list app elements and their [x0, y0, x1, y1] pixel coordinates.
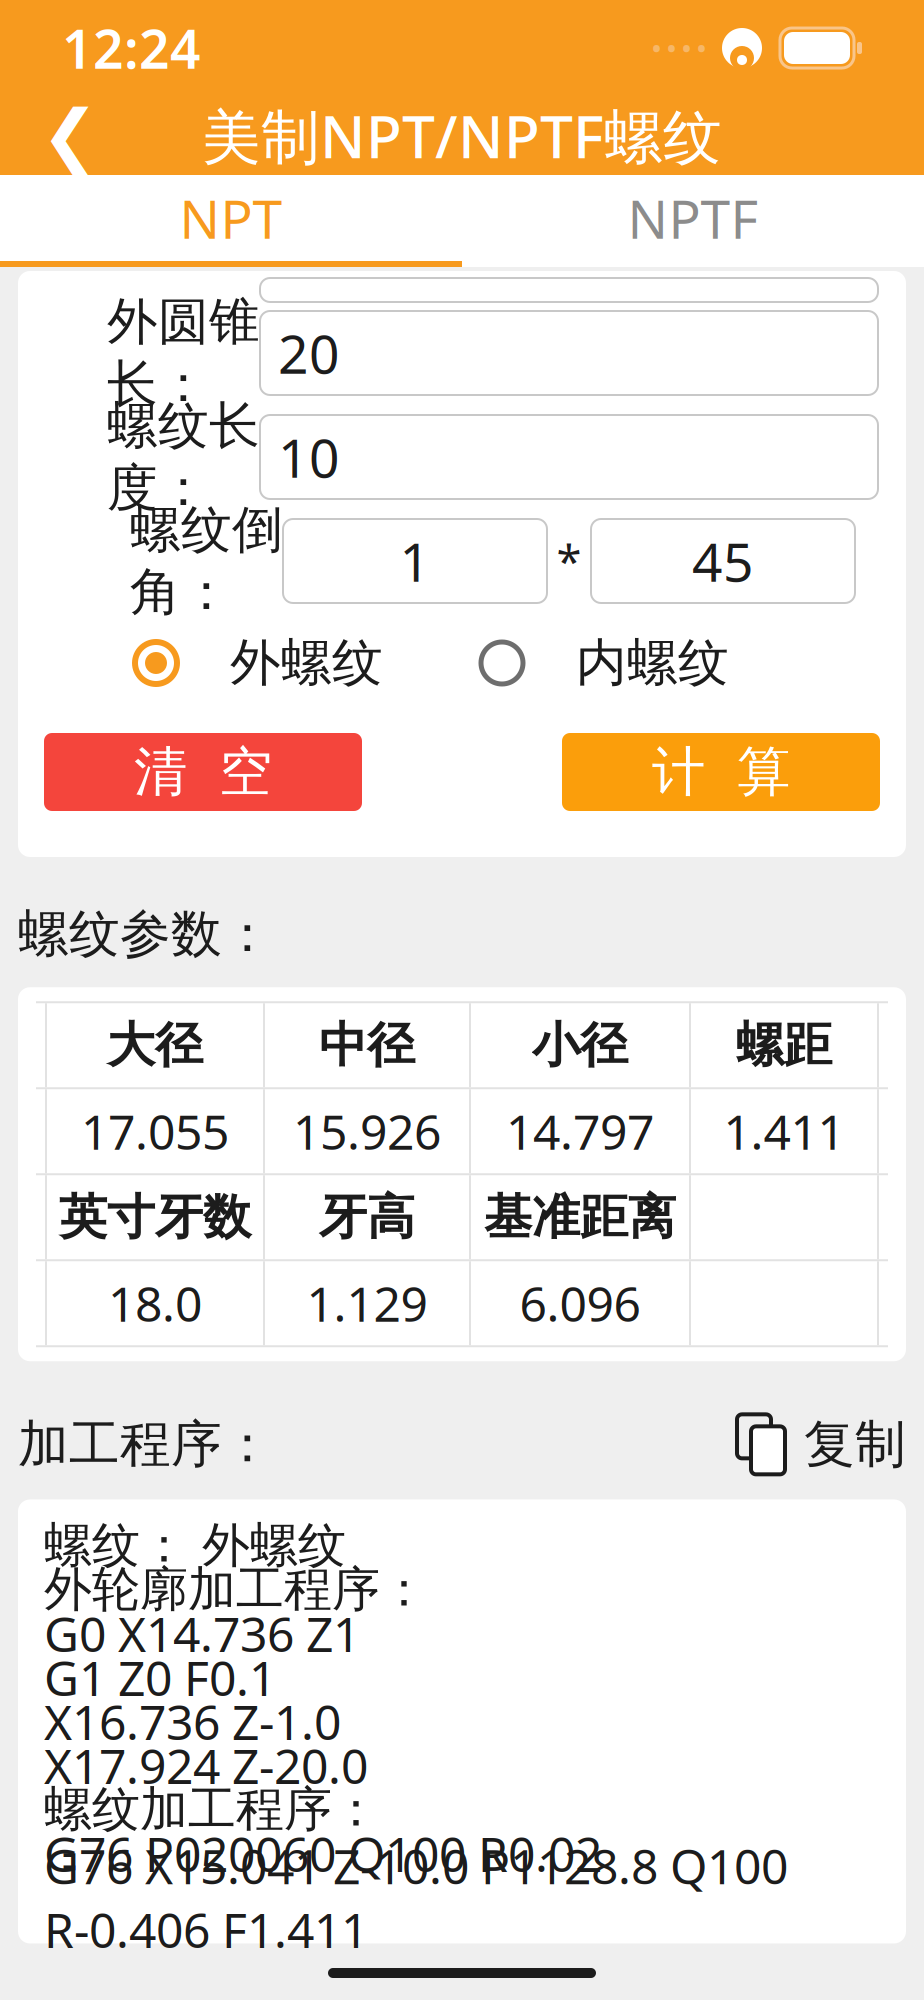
staticText: 螺纹参数：	[18, 903, 273, 965]
staticText: 螺纹： 外螺纹	[44, 1516, 346, 1575]
staticText: G1 Z0 F0.1	[44, 1646, 276, 1709]
staticText: G0 X14.736 Z1	[44, 1602, 360, 1665]
staticText: 清 空	[134, 739, 272, 805]
staticText: 螺纹倒角：	[130, 499, 283, 623]
staticText: 美制NPT/NPTF螺纹	[202, 96, 722, 174]
staticText: 20	[278, 318, 340, 388]
staticText: 15.926	[293, 1099, 441, 1163]
staticText: 1.411	[723, 1099, 844, 1163]
staticText: 17.055	[81, 1099, 229, 1163]
staticText: 外圆锥长：	[107, 291, 260, 415]
staticText: 12:24	[62, 13, 201, 83]
staticText: 加工程序：	[18, 1413, 273, 1475]
button[interactable]: 清 空	[44, 733, 362, 811]
staticText: 中径	[319, 1016, 415, 1075]
staticText: X17.924 Z-20.0	[44, 1734, 368, 1797]
staticText: 牙高	[319, 1188, 415, 1247]
button[interactable]: 内螺纹	[462, 615, 858, 711]
staticText: 基准距离	[484, 1188, 676, 1247]
staticText: NPTF	[627, 183, 758, 253]
staticText: 6.096	[519, 1271, 640, 1335]
staticText: 10	[278, 422, 340, 492]
staticText: 小径	[532, 1016, 628, 1075]
button[interactable]: NPT	[0, 175, 462, 261]
staticText: 计 算	[652, 739, 790, 805]
staticText: X16.736 Z-1.0	[44, 1690, 341, 1753]
button[interactable]: Back	[20, 85, 120, 185]
button[interactable]: 外螺纹	[66, 615, 462, 711]
staticText: 1	[399, 526, 430, 596]
staticText: 螺纹长度：	[107, 395, 260, 519]
staticText: 英寸牙数	[59, 1188, 251, 1247]
staticText: 内螺纹	[576, 632, 729, 694]
staticText: 外轮廓加工程序：	[44, 1560, 428, 1619]
staticText: 1.129	[306, 1271, 427, 1335]
staticText: 45	[692, 526, 754, 596]
staticText: NPT	[179, 183, 282, 253]
staticText: 螺距	[736, 1016, 832, 1075]
staticText: 14.797	[506, 1099, 654, 1163]
staticText: 螺纹加工程序：	[44, 1780, 380, 1839]
staticText: 复制	[804, 1413, 906, 1475]
staticText: 18.0	[108, 1271, 202, 1335]
staticText: ❮	[41, 96, 99, 175]
staticText: 外螺纹	[230, 632, 383, 694]
staticText: G76 X15.041 Z-10.0 P1128.8 Q100 R-0.406 …	[44, 1834, 788, 1961]
staticText: • • • •	[652, 32, 706, 64]
staticText: *	[556, 531, 581, 591]
button[interactable]: 计 算	[562, 733, 880, 811]
staticText: 大径	[107, 1016, 203, 1075]
staticText: G76 P020060 Q100 R0.02	[44, 1822, 602, 1885]
button[interactable]: 复制	[734, 1413, 906, 1475]
button[interactable]: NPTF	[462, 175, 924, 261]
